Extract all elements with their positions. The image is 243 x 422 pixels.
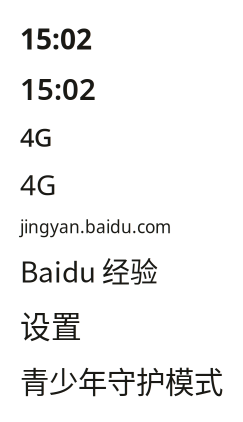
staticText: jingyan.baidu.com — [20, 215, 171, 238]
staticText: 15:02 — [20, 69, 96, 108]
staticText: 15:02 — [20, 20, 92, 57]
staticText: 4G — [20, 166, 56, 203]
staticText: Baidu 经验 — [20, 250, 158, 290]
staticText: 设置 — [20, 302, 82, 347]
staticText: 青少年守护模式 — [20, 359, 223, 401]
staticText: 4G — [20, 120, 52, 154]
